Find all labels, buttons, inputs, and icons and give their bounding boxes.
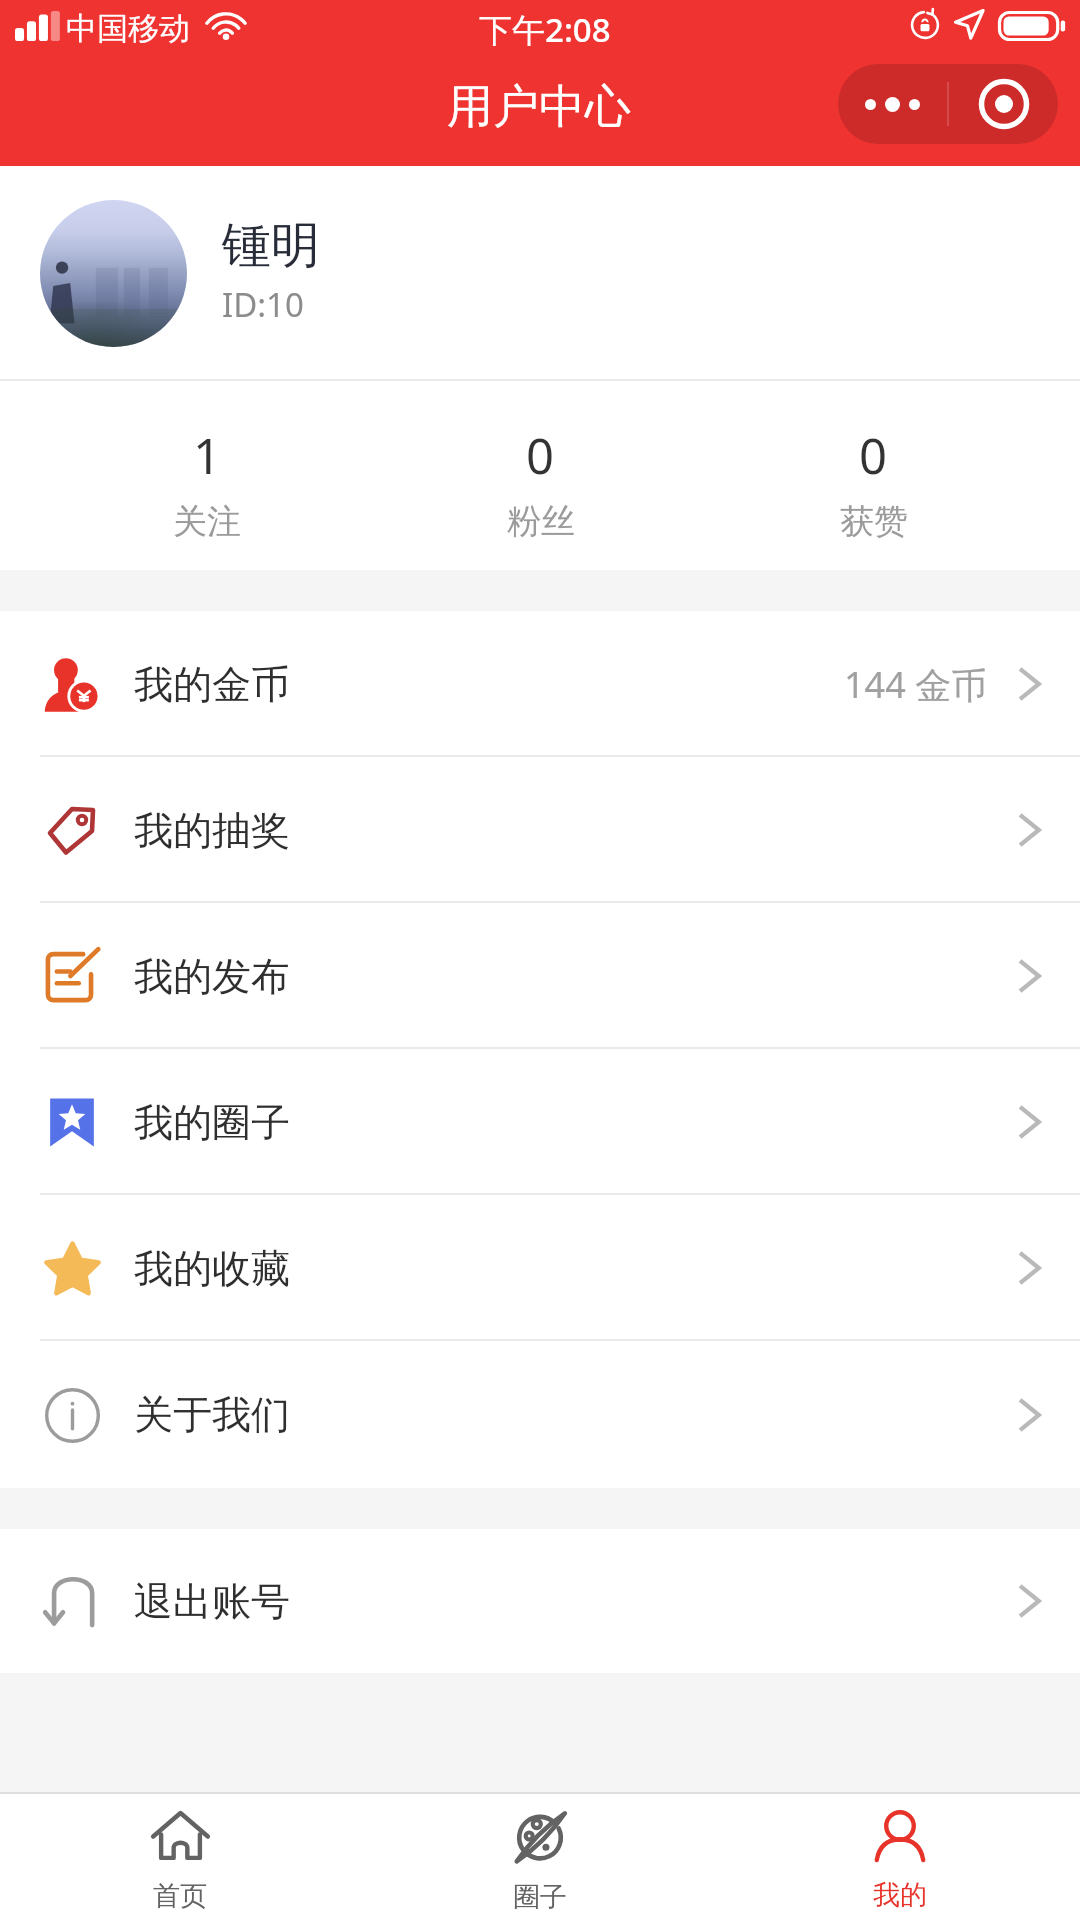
button[interactable]: 我的金币 (0, 611, 1080, 757)
staticText: 我的发布 (134, 952, 290, 1001)
staticText: 关于我们 (134, 1390, 290, 1439)
staticText: 粉丝 (507, 500, 575, 543)
button[interactable]: Close mini program (949, 64, 1058, 144)
button[interactable]: 我的发布 (0, 903, 1080, 1049)
button[interactable]: 0 (374, 381, 707, 570)
staticText: 1 (193, 422, 222, 489)
staticText: 用户中心 (447, 78, 631, 136)
staticText: 获赞 (840, 500, 908, 543)
staticText: 我的圈子 (134, 1098, 290, 1147)
button[interactable]: 我的抽奖 (0, 757, 1080, 903)
button[interactable]: 关于我们 (0, 1341, 1080, 1488)
staticText: 圈子 (513, 1880, 567, 1914)
staticText: 我的金币 (134, 660, 290, 709)
staticText: 我的 (873, 1878, 927, 1912)
staticText: 0 (859, 422, 888, 489)
button[interactable]: 1 (40, 381, 374, 570)
staticText: 我的收藏 (134, 1244, 290, 1293)
button[interactable]: 我的圈子 (0, 1049, 1080, 1195)
staticText: 首页 (153, 1879, 207, 1913)
button[interactable]: 0 (707, 381, 1040, 570)
button[interactable]: 首页 (0, 1794, 360, 1920)
button[interactable]: 我的 (720, 1794, 1080, 1920)
button[interactable]: 退出账号 (0, 1529, 1080, 1673)
staticText: 144 金币 (844, 660, 988, 709)
button[interactable]: 圈子 (360, 1794, 720, 1920)
button[interactable]: 锺明 (0, 166, 1080, 381)
button[interactable]: More options (838, 64, 947, 144)
staticText: 我的抽奖 (134, 806, 290, 855)
staticText: 退出账号 (134, 1577, 290, 1626)
staticText: 锺明 (222, 215, 320, 277)
button[interactable]: 我的收藏 (0, 1195, 1080, 1341)
staticText: 关注 (173, 500, 241, 543)
staticText: ID:10 (222, 282, 304, 327)
staticText: 0 (526, 422, 555, 489)
staticText: 中国移动 (66, 9, 190, 48)
staticText: 下午2:08 (479, 7, 611, 52)
